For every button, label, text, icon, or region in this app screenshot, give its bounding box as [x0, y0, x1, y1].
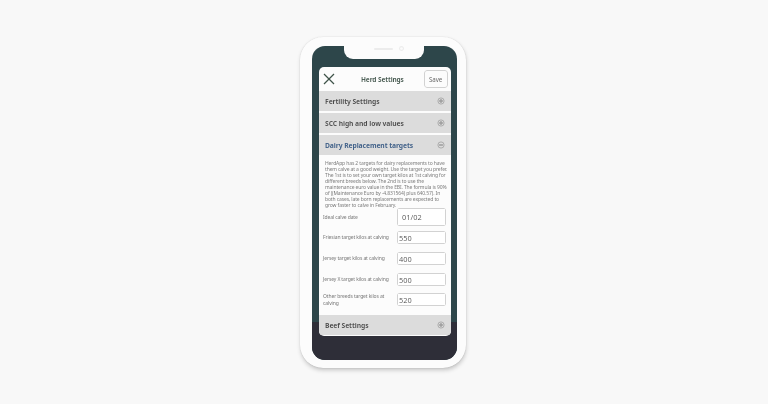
staticText: 550 [399, 233, 412, 243]
staticText: Friesian target kilos at calving [323, 234, 395, 241]
staticText: SCC high and low values [325, 119, 404, 128]
button[interactable]: Jersey target kilos at calving [319, 252, 451, 265]
button[interactable]: SCC high and low values [319, 113, 451, 133]
button[interactable]: Other breeds target kilos at calving [319, 293, 451, 306]
button[interactable]: Dairy Replacement targets [319, 135, 451, 155]
button[interactable]: Close [322, 72, 336, 86]
staticText: 01/02 [402, 212, 422, 222]
staticText: Jersey X target kilos at calving [323, 276, 395, 283]
button[interactable]: Jersey X target kilos at calving [319, 273, 451, 286]
staticText: 520 [399, 295, 412, 305]
staticText: Save [429, 75, 443, 83]
staticText: 400 [399, 254, 412, 264]
button[interactable]: Ideal calve date [319, 208, 451, 226]
staticText: Dairy Replacement targets [325, 141, 414, 150]
staticText: Fertility Settings [325, 97, 380, 106]
button[interactable]: Beef Settings [319, 315, 451, 335]
staticText: HerdApp has 2 targets for dairy replacem… [325, 160, 449, 209]
staticText: Herd Settings [361, 75, 404, 84]
button[interactable]: Fertility Settings [319, 91, 451, 111]
button[interactable]: Friesian target kilos at calving [319, 231, 451, 244]
button[interactable]: Save [424, 70, 448, 88]
staticText: Beef Settings [325, 321, 369, 330]
staticText: 500 [399, 275, 412, 285]
staticText: Jersey target kilos at calving [323, 255, 395, 262]
staticText: Ideal calve date [323, 214, 395, 221]
staticText: Other breeds target kilos at calving [323, 293, 395, 306]
